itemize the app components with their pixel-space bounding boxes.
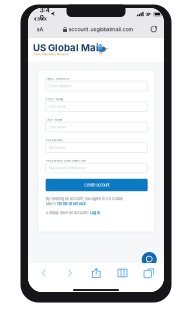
staticText: Log in	[90, 211, 100, 215]
button[interactable]: Tabs	[140, 266, 157, 279]
staticText: Password	[49, 145, 65, 150]
button[interactable]: Back to app	[34, 16, 62, 22]
button[interactable]: Log in	[90, 211, 100, 215]
staticText: Mail's	[46, 202, 56, 206]
staticText: account.usglobalmail.com	[68, 26, 133, 32]
button[interactable]: Address	[48, 24, 148, 34]
button[interactable]: Forward	[61, 266, 78, 279]
staticText: Terms of service	[57, 202, 86, 206]
staticText: PASSWORD	[46, 139, 63, 142]
staticText: Already have an account?	[46, 211, 89, 215]
staticText: Create account	[84, 183, 109, 187]
staticText: Password confirmation	[49, 166, 86, 170]
staticText: First name	[49, 104, 66, 109]
staticText: YOUR PERSONAL MAILBOX	[33, 53, 69, 56]
staticText: EMAIL ADDRESS	[46, 77, 70, 80]
button[interactable]: Bookmarks	[114, 266, 131, 279]
button[interactable]: Back	[35, 266, 52, 279]
button[interactable]: Page settings	[33, 24, 47, 34]
staticText: By creating an account, you agree to US …	[46, 197, 123, 201]
staticText: 3:40	[40, 6, 50, 21]
staticText: Back	[37, 17, 46, 21]
staticText: PASSWORD CONFIRMATION	[46, 159, 86, 162]
button[interactable]: Reload	[148, 24, 159, 34]
staticText: US Global Mail	[33, 42, 102, 54]
staticText: aA	[36, 26, 43, 32]
staticText: Last name	[49, 125, 66, 129]
staticText: FIRST NAME	[46, 98, 64, 101]
button[interactable]: Share	[88, 266, 105, 279]
staticText: Email address	[49, 84, 72, 88]
button[interactable]: Create account	[46, 179, 148, 191]
staticText: LAST NAME	[46, 118, 63, 121]
button[interactable]: Terms of service	[57, 202, 86, 206]
button[interactable]: Chat with us	[142, 252, 157, 267]
